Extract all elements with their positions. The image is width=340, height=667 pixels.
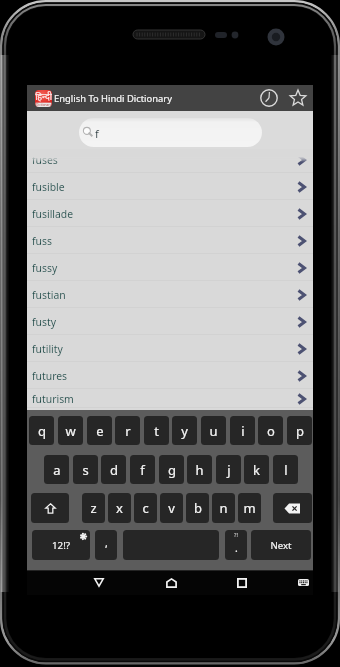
- staticText: s: [82, 461, 89, 479]
- staticText: t: [154, 422, 159, 440]
- staticText: x: [116, 499, 123, 517]
- button[interactable]: m: [238, 493, 261, 523]
- button[interactable]: App icon: [35, 90, 52, 107]
- button[interactable]: futility: [27, 335, 313, 362]
- staticText: .: [235, 541, 238, 555]
- staticText: i: [241, 422, 245, 440]
- button[interactable]: futures: [27, 362, 313, 389]
- staticText: p: [296, 422, 304, 440]
- staticText: Next: [270, 539, 292, 552]
- staticText: h: [195, 461, 204, 479]
- staticText: d: [110, 461, 118, 479]
- other: Backspace: [284, 503, 301, 514]
- button[interactable]: f: [130, 455, 155, 484]
- staticText: l: [284, 461, 288, 479]
- button[interactable]: Keyboard: [289, 570, 317, 595]
- button[interactable]: l: [273, 455, 298, 484]
- button[interactable]: fusible: [27, 173, 313, 200]
- button[interactable]: b: [186, 493, 209, 523]
- staticText: f: [140, 461, 145, 479]
- staticText: q: [38, 422, 46, 440]
- button[interactable]: w: [58, 416, 83, 445]
- staticText: ,: [105, 536, 108, 550]
- staticText: c: [142, 499, 149, 517]
- staticText: fusty: [32, 315, 57, 329]
- staticText: b: [194, 499, 202, 517]
- staticText: fusible: [32, 180, 65, 194]
- button[interactable]: e: [87, 416, 112, 445]
- staticText: y: [181, 422, 188, 440]
- button[interactable]: h: [187, 455, 212, 484]
- button[interactable]: Recents: [228, 570, 256, 595]
- button[interactable]: x: [108, 493, 131, 523]
- button[interactable]: k: [244, 455, 269, 484]
- staticText: n: [219, 499, 228, 517]
- staticText: English To Hindi Dictionary: [54, 92, 172, 105]
- other: Shift: [45, 503, 56, 514]
- button[interactable]: Home: [157, 570, 185, 595]
- staticText: e: [96, 422, 104, 440]
- staticText: u: [209, 422, 218, 440]
- button[interactable]: fuses: [27, 149, 313, 173]
- button[interactable]: p: [287, 416, 312, 445]
- button[interactable]: s: [73, 455, 98, 484]
- button[interactable]: fussy: [27, 254, 313, 281]
- button[interactable]: futurism: [27, 389, 313, 408]
- button[interactable]: r: [115, 416, 140, 445]
- button[interactable]: q: [29, 416, 54, 445]
- button[interactable]: g: [159, 455, 184, 484]
- button[interactable]: ,: [95, 530, 117, 560]
- staticText: z: [90, 499, 97, 517]
- button[interactable]: Back: [85, 570, 113, 595]
- staticText: m: [243, 499, 256, 517]
- button[interactable]: o: [258, 416, 283, 445]
- button[interactable]: t: [144, 416, 169, 445]
- button[interactable]: Favorites: [283, 85, 312, 111]
- staticText: Dictionary: [36, 103, 52, 107]
- staticText: w: [65, 422, 76, 440]
- button[interactable]: fustian: [27, 281, 313, 308]
- staticText: k: [253, 461, 260, 479]
- staticText: j: [227, 461, 231, 479]
- staticText: fusillade: [32, 207, 74, 221]
- button[interactable]: fusty: [27, 308, 313, 335]
- button[interactable]: i: [230, 416, 255, 445]
- staticText: हिन्दी: [35, 90, 52, 102]
- button[interactable]: .: [225, 530, 247, 560]
- button[interactable]: fuss: [27, 227, 313, 254]
- button[interactable]: 12!?: [32, 530, 90, 560]
- button[interactable]: z: [82, 493, 105, 523]
- button[interactable]: c: [134, 493, 157, 523]
- button[interactable]: fusillade: [27, 200, 313, 227]
- button[interactable]: v: [160, 493, 183, 523]
- staticText: f: [95, 126, 99, 141]
- staticText: a: [53, 461, 61, 479]
- staticText: fussy: [32, 261, 58, 275]
- button[interactable]: History: [254, 85, 283, 111]
- button[interactable]: y: [172, 416, 197, 445]
- button[interactable]: Shift: [31, 493, 69, 523]
- button[interactable]: d: [101, 455, 126, 484]
- staticText: fuses: [32, 153, 58, 167]
- staticText: g: [168, 461, 176, 479]
- staticText: futurism: [32, 392, 74, 406]
- button[interactable]: n: [212, 493, 235, 523]
- staticText: fustian: [32, 288, 66, 302]
- button[interactable]: j: [216, 455, 241, 484]
- staticText: futures: [32, 369, 68, 383]
- button[interactable]: Next: [251, 530, 311, 560]
- button[interactable]: Backspace: [273, 493, 312, 523]
- staticText: v: [168, 499, 175, 517]
- staticText: futility: [32, 342, 63, 356]
- staticText: ?!: [234, 531, 238, 538]
- button[interactable]: f: [79, 118, 262, 147]
- staticText: o: [267, 422, 275, 440]
- button[interactable]: a: [44, 455, 69, 484]
- staticText: fuss: [32, 234, 52, 248]
- button[interactable]: u: [201, 416, 226, 445]
- staticText: 12!?: [52, 539, 71, 552]
- staticText: r: [125, 422, 131, 440]
